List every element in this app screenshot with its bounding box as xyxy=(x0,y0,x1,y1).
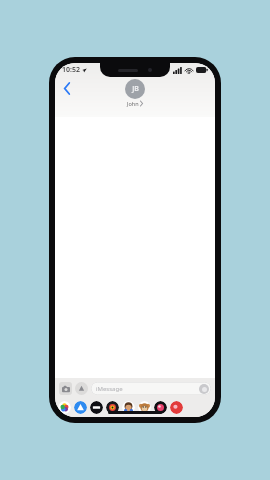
button[interactable]: iMessage xyxy=(91,382,211,395)
staticText: JB xyxy=(132,84,139,94)
staticText: iMessage xyxy=(96,385,123,393)
button[interactable]: Memoji xyxy=(122,401,135,414)
button[interactable]: Apps xyxy=(75,382,88,395)
button[interactable]: Photos xyxy=(58,401,71,414)
button[interactable]: Digital Touch xyxy=(154,401,167,414)
button[interactable]: Back xyxy=(58,79,76,97)
button[interactable]: App Store xyxy=(74,401,87,414)
staticText: John xyxy=(127,100,139,107)
button[interactable]: Apple Pay xyxy=(90,401,103,414)
staticText: 10:52 xyxy=(62,65,80,75)
button[interactable]: Animoji xyxy=(138,401,151,414)
button[interactable]: Send xyxy=(199,384,209,394)
button[interactable]: More xyxy=(170,401,183,414)
button[interactable]: Camera xyxy=(59,382,72,395)
button[interactable]: JB xyxy=(125,79,145,107)
button[interactable]: Music xyxy=(106,401,119,414)
